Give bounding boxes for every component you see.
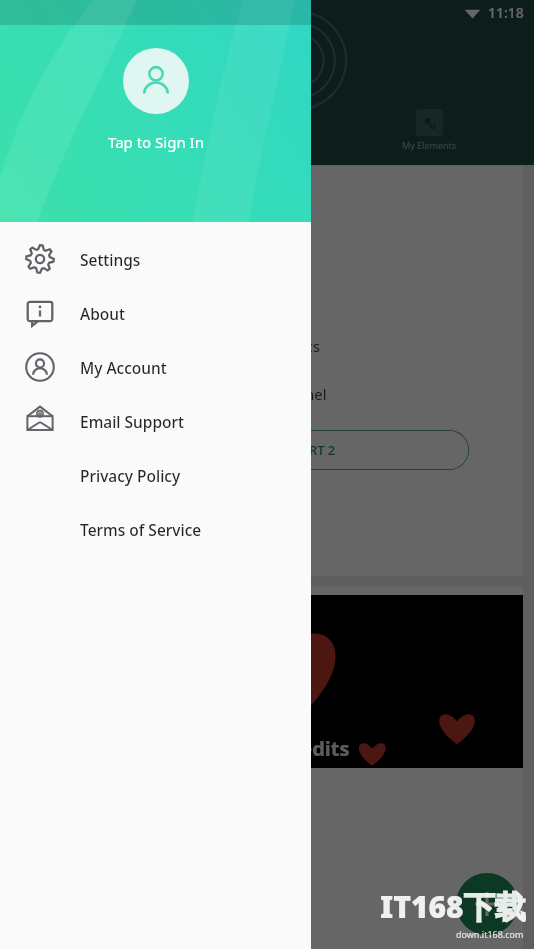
staticText: Settings xyxy=(80,249,141,270)
staticText: Welcome! This is the first motion graphi… xyxy=(26,336,327,404)
staticText: IT168 xyxy=(380,886,464,927)
button[interactable]: About xyxy=(0,286,311,340)
staticText: @pixle_edits xyxy=(226,735,350,762)
staticText: Terms of Service xyxy=(80,519,202,540)
button[interactable]: Email Support xyxy=(0,394,311,448)
button[interactable]: My Account xyxy=(0,340,311,394)
button[interactable]: Settings xyxy=(0,232,311,286)
staticText: About xyxy=(80,303,125,324)
button[interactable]: Welcome! This is the first motion graphi… xyxy=(10,166,523,576)
button[interactable]: GETTING STARTED — PART 2 xyxy=(26,430,469,470)
staticText: Privacy Policy xyxy=(80,465,181,486)
staticText: My Account xyxy=(80,357,167,378)
button[interactable]: Terms of Service xyxy=(0,502,311,556)
staticText: GETTING STARTED — PART 2 xyxy=(160,441,336,459)
staticText: My Elements xyxy=(402,139,457,151)
staticText: 11:18 xyxy=(488,3,524,22)
button[interactable]: Tap to Sign In xyxy=(0,0,311,222)
staticText: Tap to Sign In xyxy=(108,132,204,152)
button[interactable]: Privacy Policy xyxy=(0,448,311,502)
button[interactable]: Add xyxy=(456,873,518,935)
button[interactable]: @pixle_edits xyxy=(10,586,523,949)
staticText: 下载 xyxy=(464,888,526,927)
staticText: Email Support xyxy=(80,411,185,432)
staticText: down.it168.com xyxy=(456,928,524,940)
button[interactable] xyxy=(0,0,534,949)
